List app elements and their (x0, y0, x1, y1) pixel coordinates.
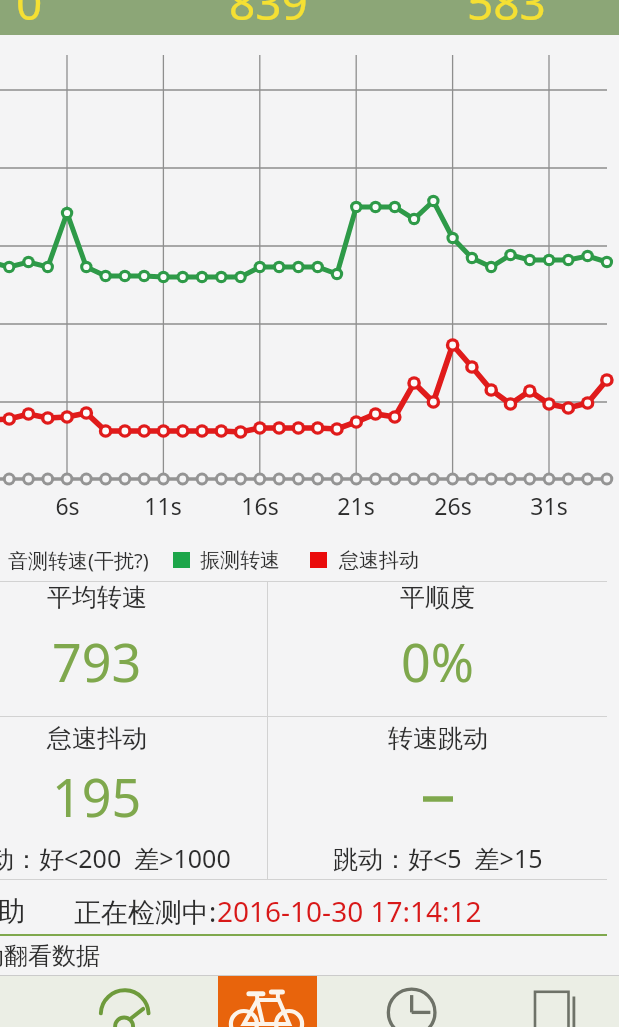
button[interactable]: 平均转速 (0, 582, 267, 716)
staticText: 动翻看数据 (0, 941, 100, 971)
staticText: 16s (241, 490, 279, 521)
staticText: 平顺度 (400, 582, 475, 613)
button[interactable]: Speedometer (53, 976, 196, 1027)
staticText: 21s (337, 490, 375, 521)
staticText: 怠速抖动 (339, 548, 419, 573)
staticText: 6s (55, 490, 80, 521)
staticText: 195 (52, 761, 142, 832)
staticText: 怠速抖动 (47, 723, 147, 754)
staticText: 平均转速 (47, 582, 147, 613)
button[interactable]: 平顺度 (268, 582, 607, 716)
staticText: 音测转速(干扰?) (8, 547, 149, 574)
button[interactable]: Bike (196, 976, 339, 1027)
button[interactable]: Notes (482, 976, 619, 1027)
staticText: 2016-10-30 17:14:12 (217, 892, 482, 930)
staticText: 正在检测中: (74, 893, 217, 930)
staticText: 583 (467, 0, 546, 34)
staticText: 11s (144, 490, 182, 521)
button[interactable]: 帮助 (0, 888, 619, 934)
staticText: 0 (16, 0, 43, 34)
button[interactable]: 转速跳动 (268, 717, 607, 879)
staticText: 0% (401, 626, 474, 697)
staticText: 跳动：好<5 差>15 (333, 841, 543, 875)
staticText: 26s (434, 490, 472, 521)
staticText: 帮助 (0, 894, 25, 929)
staticText: 振测转速 (200, 548, 280, 573)
staticText: 31s (530, 490, 568, 521)
staticText: 转速跳动 (388, 723, 488, 754)
button[interactable]: 怠速抖动 (0, 717, 267, 879)
button[interactable]: History (339, 976, 482, 1027)
staticText: 抖动：好<200 差>1000 (0, 841, 231, 875)
staticText: 793 (52, 626, 142, 697)
staticText: 839 (229, 0, 308, 34)
